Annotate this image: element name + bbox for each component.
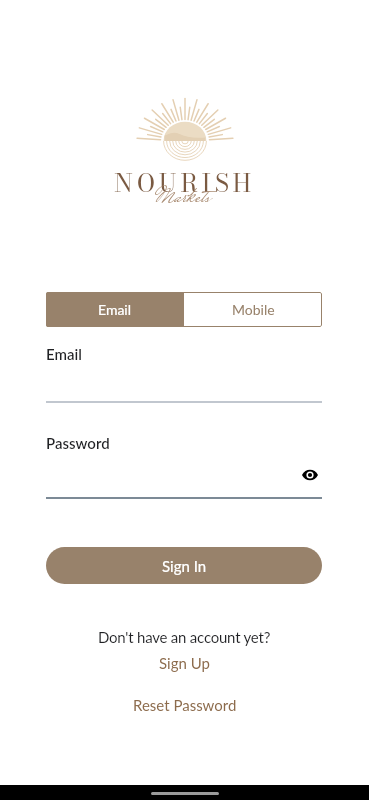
button[interactable]: Email [46, 292, 184, 327]
staticText: Password [46, 434, 110, 452]
button[interactable]: Sign Up [153, 653, 216, 673]
staticText: Mobile [232, 301, 275, 318]
button[interactable]: Mobile [184, 292, 322, 327]
staticText: Markets [155, 180, 210, 217]
button[interactable]: Show password [299, 464, 321, 486]
staticText: Don't have an account yet? [98, 628, 271, 646]
staticText: Sign In [162, 557, 207, 575]
staticText: NOURISH [114, 164, 255, 201]
staticText: Reset Password [133, 696, 237, 714]
staticText: Email [46, 345, 82, 363]
staticText: Email [98, 301, 132, 318]
button[interactable]: Reset Password [127, 695, 243, 715]
staticText: Sign Up [159, 654, 210, 672]
button[interactable]: Sign In [46, 547, 322, 584]
